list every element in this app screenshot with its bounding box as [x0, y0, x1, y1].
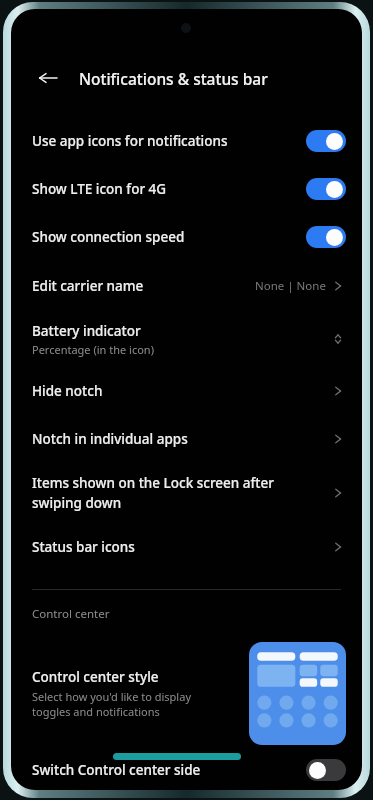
button[interactable]: Control center style [11, 636, 362, 751]
staticText: Select how you'd like to display toggles… [32, 689, 191, 719]
button[interactable]: Edit carrier name [11, 261, 362, 311]
staticText: Show connection speed [32, 228, 306, 246]
button[interactable]: Switch Control center side [11, 751, 362, 787]
button[interactable]: Toggle off [306, 759, 346, 781]
staticText: Control center style [32, 668, 159, 686]
staticText: Notifications & status bar [79, 68, 268, 89]
staticText: Hide notch [32, 382, 330, 400]
button[interactable]: Show connection speed [11, 213, 362, 261]
staticText: Notch in individual apps [32, 430, 330, 448]
staticText: Edit carrier name [32, 277, 255, 295]
button[interactable]: Notch in individual apps [11, 415, 362, 463]
staticText: Switch Control center side [32, 761, 306, 779]
button[interactable]: Control center style preview [249, 642, 346, 745]
button[interactable]: Toggle on [306, 178, 346, 200]
button[interactable]: Status bar icons [11, 523, 362, 571]
staticText: Items shown on the Lock screen after swi… [32, 474, 330, 512]
button[interactable]: Battery indicator [11, 311, 362, 367]
button[interactable]: Back [31, 61, 65, 95]
staticText: Battery indicator [32, 322, 141, 340]
staticText: Percentage (in the icon) [32, 342, 154, 357]
button[interactable]: Items shown on the Lock screen after swi… [11, 463, 362, 523]
staticText: None | None [255, 278, 326, 294]
staticText: Use app icons for notifications [32, 132, 306, 150]
staticText: Control center [32, 606, 110, 622]
button[interactable]: Show LTE icon for 4G [11, 165, 362, 213]
staticText: Show LTE icon for 4G [32, 180, 306, 198]
button[interactable]: Hide notch [11, 367, 362, 415]
button[interactable]: Use app icons for notifications [11, 117, 362, 165]
button[interactable]: Toggle on [306, 130, 346, 152]
button[interactable]: Toggle on [306, 226, 346, 248]
staticText: Status bar icons [32, 538, 330, 556]
